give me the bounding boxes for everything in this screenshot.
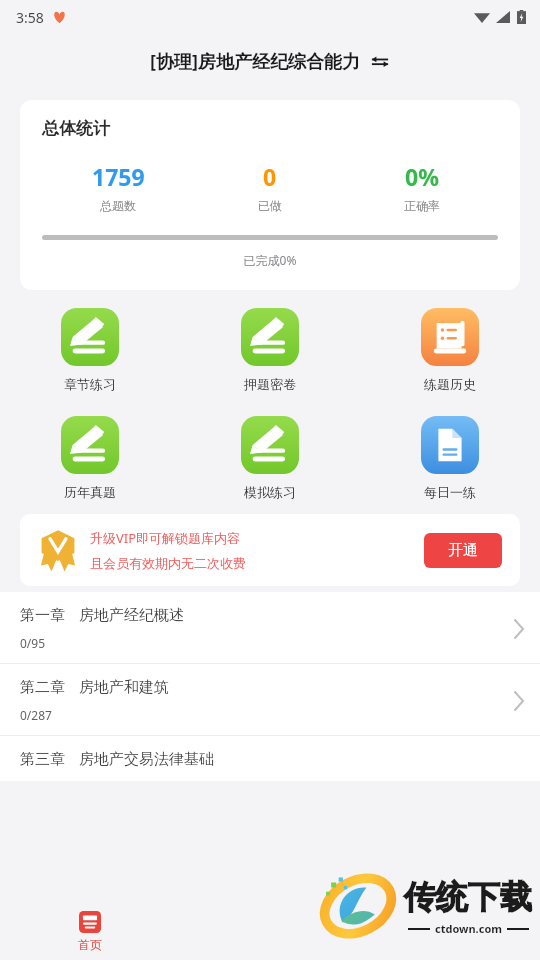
staticText: 房地产交易法律基础 [79, 750, 214, 769]
button[interactable]: 章节练习 [0, 304, 180, 396]
staticText: 且会员有效期内无二次收费 [90, 555, 246, 571]
staticText: 练题历史 [424, 376, 476, 392]
staticText: 第二章 [20, 678, 65, 697]
button[interactable]: 历年真题 [0, 412, 180, 504]
staticText: 总体统计 [42, 118, 110, 139]
staticText: [协理]房地产经纪综合能力 [150, 49, 360, 74]
button[interactable]: 每日一练 [360, 412, 540, 504]
staticText: ctdown.com [435, 921, 502, 936]
staticText: 1759 [92, 161, 145, 192]
staticText: 模拟练习 [244, 484, 296, 500]
staticText: 第一章 [20, 606, 65, 625]
staticText: 升级VIP即可解锁题库内容 [90, 529, 241, 547]
staticText: 房地产经纪概述 [79, 606, 184, 625]
button[interactable]: 切换科目 [370, 52, 390, 72]
staticText: 历年真题 [64, 484, 116, 500]
button[interactable]: 练题历史 [360, 304, 540, 396]
staticText: 首页 [78, 937, 102, 952]
staticText: 0/287 [20, 707, 52, 723]
staticText: 0/95 [20, 635, 46, 651]
staticText: 押题密卷 [244, 376, 296, 392]
staticText: 第三章 [20, 750, 65, 769]
staticText: 传统下载 [404, 877, 532, 917]
staticText: 正确率 [404, 198, 440, 213]
button[interactable]: 押题密卷 [180, 304, 360, 396]
staticText: 3:58 [16, 8, 44, 27]
staticText: 房地产和建筑 [79, 678, 169, 697]
staticText: 章节练习 [64, 376, 116, 392]
button[interactable]: 模拟练习 [180, 412, 360, 504]
button[interactable]: 升级VIP即可解锁题库内容 [20, 514, 520, 586]
staticText: 0% [405, 161, 439, 192]
staticText: 已完成0% [42, 252, 498, 268]
staticText: 总题数 [100, 198, 136, 213]
button[interactable]: 开通 [424, 533, 502, 568]
staticText: 0 [263, 161, 277, 192]
button[interactable]: 首页 [72, 905, 108, 958]
staticText: 每日一练 [424, 484, 476, 500]
staticText: 已做 [258, 198, 282, 213]
staticText: 开通 [448, 541, 478, 560]
button[interactable]: 第三章 [0, 736, 540, 781]
button[interactable]: 第二章 [0, 664, 540, 735]
button[interactable]: 第一章 [0, 592, 540, 663]
